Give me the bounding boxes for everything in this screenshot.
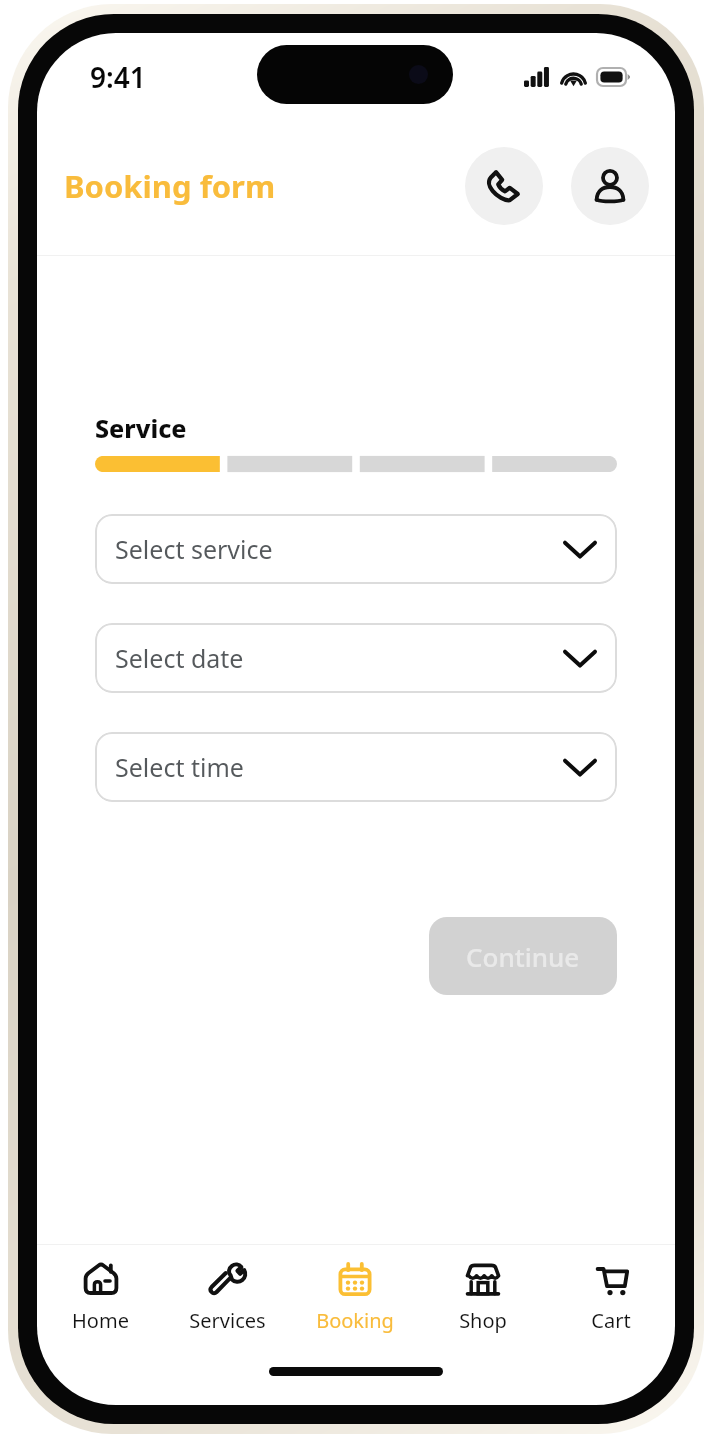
staticText: Booking form: [64, 165, 276, 207]
button[interactable]: Services: [164, 1245, 291, 1349]
staticText: Booking: [316, 1307, 394, 1334]
staticText: Select time: [115, 750, 244, 784]
button[interactable]: Select time: [95, 732, 617, 802]
staticText: Shop: [459, 1307, 507, 1334]
button[interactable]: Call: [465, 147, 543, 225]
button[interactable]: Select service: [95, 514, 617, 584]
button[interactable]: Booking: [291, 1245, 419, 1349]
staticText: Select service: [115, 532, 273, 566]
staticText: Services: [189, 1307, 266, 1334]
button[interactable]: Home: [37, 1245, 164, 1349]
staticText: Home: [72, 1307, 129, 1334]
button[interactable]: Profile: [571, 147, 649, 225]
button[interactable]: Cart: [547, 1245, 675, 1349]
button[interactable]: Continue: [429, 917, 617, 995]
staticText: Select date: [115, 641, 244, 675]
staticText: 9:41: [90, 58, 146, 96]
staticText: Cart: [591, 1307, 631, 1334]
staticText: Service: [95, 411, 187, 445]
staticText: Continue: [466, 939, 580, 974]
button[interactable]: Select date: [95, 623, 617, 693]
button[interactable]: Shop: [419, 1245, 547, 1349]
